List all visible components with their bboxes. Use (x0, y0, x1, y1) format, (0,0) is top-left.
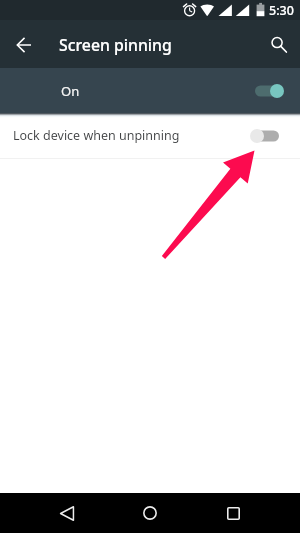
button[interactable]: Home (127, 493, 173, 533)
button[interactable]: Back (44, 493, 90, 533)
staticText: 5:30 (269, 2, 294, 19)
button[interactable]: Lock device when unpinning (0, 113, 300, 158)
staticText: Screen pinning (59, 34, 172, 56)
button[interactable]: Navigate up (6, 27, 41, 62)
button[interactable]: Search (261, 27, 296, 62)
button[interactable]: Recent apps (210, 493, 256, 533)
staticText: Lock device when unpinning (13, 127, 180, 144)
staticText: On (61, 82, 80, 100)
button[interactable]: On (0, 68, 300, 113)
